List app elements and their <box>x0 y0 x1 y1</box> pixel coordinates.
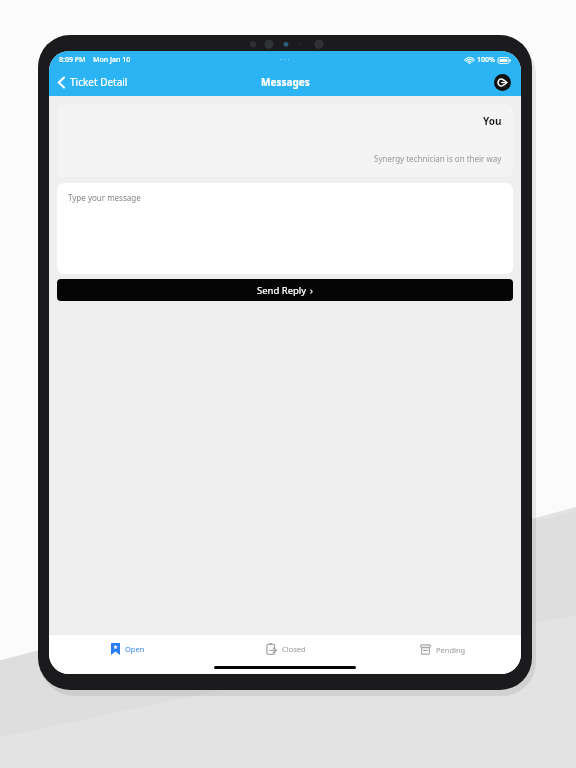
staticText: Mon Jan 10 <box>93 55 131 65</box>
staticText: Open <box>125 644 145 654</box>
staticText: · · · <box>280 55 290 65</box>
button[interactable]: Closed <box>207 635 364 663</box>
button[interactable]: Send Reply <box>57 279 513 301</box>
staticText: 8:09 PM <box>59 55 86 65</box>
button[interactable]: Log out <box>494 74 511 91</box>
button[interactable]: You <box>57 104 513 177</box>
staticText: 100% <box>477 55 495 65</box>
staticText: Pending <box>436 645 466 655</box>
staticText: Synergy technician is on their way <box>374 153 502 164</box>
staticText: › <box>310 284 313 297</box>
staticText: Ticket Detail <box>70 75 128 89</box>
staticText: Closed <box>282 644 306 654</box>
staticText: Messages <box>261 75 310 89</box>
button[interactable]: Open <box>49 635 207 663</box>
button[interactable]: Ticket Detail <box>49 71 136 93</box>
button[interactable]: Type your message <box>57 183 513 274</box>
staticText: You <box>483 114 502 128</box>
staticText: Type your message <box>68 192 141 203</box>
staticText: Send Reply <box>257 284 307 297</box>
button[interactable]: Pending <box>364 635 521 663</box>
